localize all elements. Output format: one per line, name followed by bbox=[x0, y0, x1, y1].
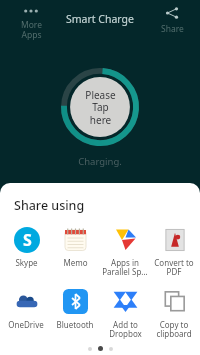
staticText: Please Tap here bbox=[85, 88, 116, 127]
staticText: Smart Charge bbox=[66, 12, 134, 26]
button[interactable]: Bluetooth bbox=[52, 286, 98, 332]
button[interactable]: S bbox=[3, 224, 49, 270]
staticText: Share using bbox=[14, 197, 85, 214]
staticText: More Apps bbox=[21, 19, 42, 40]
button[interactable]: Copy to clipboard bbox=[151, 286, 197, 342]
staticText: Apps in Parallel Sp... bbox=[102, 257, 148, 278]
staticText: OneDrive bbox=[8, 319, 44, 330]
staticText: Add to Dropbox bbox=[109, 319, 142, 340]
staticText: Charging. bbox=[78, 155, 122, 168]
button[interactable]: More Apps bbox=[8, 6, 54, 40]
button[interactable]: OneDrive bbox=[3, 286, 49, 332]
button[interactable]: Convert to PDF bbox=[151, 224, 197, 280]
button[interactable]: Add to Dropbox bbox=[102, 286, 148, 342]
button[interactable]: Share bbox=[152, 6, 192, 35]
button[interactable]: Apps in Parallel Sp... bbox=[102, 224, 148, 280]
staticText: Memo bbox=[63, 257, 88, 268]
staticText: Skype bbox=[15, 257, 38, 268]
button[interactable]: Memo bbox=[52, 224, 98, 270]
staticText: Convert to PDF bbox=[154, 257, 194, 278]
staticText: Share bbox=[161, 23, 184, 35]
button[interactable]: Please Tap here bbox=[61, 68, 139, 146]
staticText: Copy to clipboard bbox=[156, 319, 192, 340]
staticText: Bluetooth bbox=[56, 319, 94, 330]
staticText: S bbox=[23, 229, 32, 251]
